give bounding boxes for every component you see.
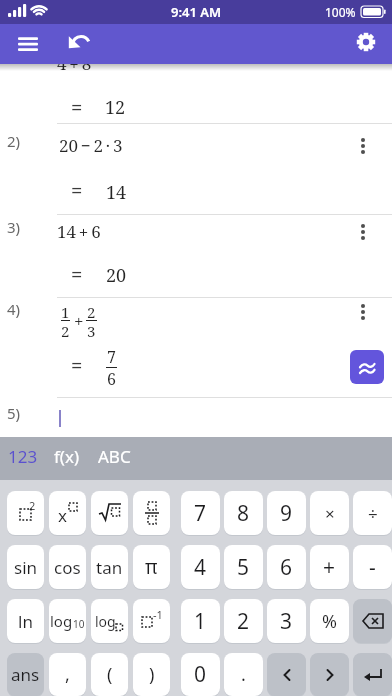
staticText: log <box>50 611 73 631</box>
button[interactable]: f(x) <box>50 437 84 474</box>
button[interactable]: ÷ <box>353 491 392 535</box>
staticText: 6 <box>107 368 116 390</box>
button[interactable]: -1 <box>133 599 170 643</box>
staticText: ans <box>11 663 40 686</box>
button[interactable]: log <box>49 599 86 643</box>
staticText: tan <box>96 556 123 579</box>
button[interactable] <box>0 214 392 297</box>
button[interactable] <box>267 653 306 696</box>
staticText: 2 <box>237 607 250 636</box>
staticText: ( <box>107 662 113 687</box>
button[interactable]: 9 <box>267 491 306 535</box>
button[interactable]: . <box>224 653 263 696</box>
button[interactable]: cos <box>49 545 86 589</box>
button[interactable]: 123 <box>4 437 42 474</box>
button[interactable] <box>348 24 384 60</box>
staticText: 6 <box>280 553 293 582</box>
button[interactable]: ln <box>7 599 44 643</box>
button[interactable] <box>353 599 392 643</box>
button[interactable]: 7 <box>181 491 220 535</box>
button[interactable]: 2 <box>7 491 44 535</box>
button[interactable]: , <box>49 653 86 696</box>
button[interactable] <box>350 350 384 384</box>
button[interactable]: 0 <box>181 653 220 696</box>
button[interactable]: ) <box>133 653 170 696</box>
staticText: 1 <box>61 302 70 322</box>
button[interactable] <box>0 297 392 397</box>
button[interactable]: ans <box>7 653 44 696</box>
button[interactable] <box>0 123 392 214</box>
staticText: 0 <box>194 660 207 689</box>
staticText: 3) <box>7 217 21 237</box>
button[interactable] <box>91 491 128 535</box>
button[interactable]: ABC <box>94 437 135 474</box>
button[interactable]: x <box>49 491 86 535</box>
button[interactable]: 8 <box>224 491 263 535</box>
button[interactable] <box>0 397 392 437</box>
staticText: = <box>71 94 83 121</box>
staticText: 9 <box>280 499 293 528</box>
button[interactable]: 4 <box>181 545 220 589</box>
staticText: 4) <box>7 299 21 319</box>
staticText: 7 <box>107 346 116 368</box>
button[interactable]: 6 <box>267 545 306 589</box>
staticText: 100% <box>325 4 356 20</box>
staticText: 14 + 6 <box>57 220 101 243</box>
button[interactable] <box>10 26 46 62</box>
button[interactable]: 5 <box>224 545 263 589</box>
staticText: . <box>241 662 246 687</box>
button[interactable]: 3 <box>267 599 306 643</box>
staticText: 9:41 AM <box>171 3 222 21</box>
staticText: -1 <box>153 607 163 622</box>
button[interactable] <box>351 220 375 244</box>
staticText: 10 <box>73 617 85 631</box>
button[interactable] <box>310 653 349 696</box>
button[interactable]: + <box>310 545 349 589</box>
staticText: ABC <box>98 445 131 466</box>
staticText: 2 <box>29 498 36 513</box>
staticText: 2 <box>61 321 70 341</box>
button[interactable] <box>62 26 98 62</box>
button[interactable]: × <box>310 491 349 535</box>
staticText: 14 <box>106 180 127 205</box>
staticText: ) <box>149 662 155 687</box>
staticText: 2 <box>87 302 96 322</box>
button[interactable]: 1 <box>181 599 220 643</box>
button[interactable]: π <box>133 545 170 589</box>
button[interactable]: sin <box>7 545 44 589</box>
button[interactable] <box>353 653 392 696</box>
staticText: % <box>322 609 337 634</box>
button[interactable]: log <box>91 599 128 643</box>
staticText: 3 <box>280 607 293 636</box>
staticText: f(x) <box>54 445 80 466</box>
staticText: + <box>74 309 84 332</box>
staticText: , <box>65 662 70 687</box>
button[interactable] <box>351 300 375 324</box>
staticText: 20 − 2 · 3 <box>59 134 123 157</box>
staticText: ln <box>18 610 33 633</box>
button[interactable]: tan <box>91 545 128 589</box>
staticText: 5 <box>237 553 250 582</box>
staticText: ÷ <box>368 502 378 525</box>
staticText: - <box>369 553 376 582</box>
staticText: 7 <box>194 499 207 528</box>
button[interactable]: ( <box>91 653 128 696</box>
staticText: 4 + 8 <box>57 64 92 75</box>
staticText: π <box>145 554 158 580</box>
button[interactable]: 2 <box>224 599 263 643</box>
staticText: log <box>95 612 116 631</box>
staticText: x <box>58 504 67 527</box>
button[interactable] <box>351 134 375 158</box>
staticText: 8 <box>237 499 250 528</box>
staticText: 123 <box>8 445 38 466</box>
staticText: 2) <box>7 131 21 151</box>
staticText: 20 <box>106 263 127 288</box>
button[interactable] <box>133 491 170 535</box>
button[interactable] <box>0 64 392 123</box>
staticText: = <box>71 261 83 288</box>
button[interactable]: % <box>310 599 349 643</box>
button[interactable]: - <box>353 545 392 589</box>
staticText: = <box>71 352 83 379</box>
staticText: 4 <box>194 553 207 582</box>
staticText: cos <box>54 556 81 579</box>
